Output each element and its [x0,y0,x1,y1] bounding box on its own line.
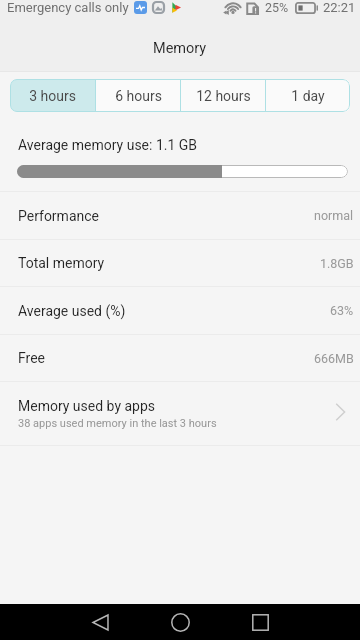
staticText: Performance [18,208,99,224]
staticText: Free [18,350,46,366]
staticText: 25% [265,0,289,15]
staticText: 38 apps used memory in the last 3 hours [18,417,217,430]
button[interactable]: Performance [0,192,360,239]
button[interactable]: 1 day [266,79,350,112]
staticText: 12 hours [196,88,251,104]
button[interactable]: Average used (%) [0,287,360,334]
staticText: Emergency calls only [7,0,129,15]
button[interactable]: Total memory [0,240,360,286]
button[interactable]: 3 hours [10,79,95,112]
staticText: Average memory use: 1.1 GB [18,137,198,153]
staticText: Total memory [18,255,105,271]
button[interactable]: Recents [220,604,300,640]
button[interactable]: Back [60,604,140,640]
staticText: 666MB [314,351,354,366]
button[interactable]: 12 hours [181,79,265,112]
button[interactable]: Memory used by apps [0,382,360,445]
staticText: 6 hours [115,88,162,104]
staticText: 63% [330,303,354,318]
staticText: Memory used by apps [18,398,156,414]
button[interactable]: Free [0,335,360,381]
button[interactable]: 6 hours [96,79,180,112]
staticText: normal [314,208,354,223]
button[interactable]: Home [140,604,220,640]
staticText: 1.8GB [320,256,354,271]
staticText: Memory [153,40,207,57]
staticText: 22:21 [323,0,356,15]
staticText: Average used (%) [18,303,126,319]
staticText: 1 day [291,88,325,104]
staticText: 3 hours [29,88,76,104]
